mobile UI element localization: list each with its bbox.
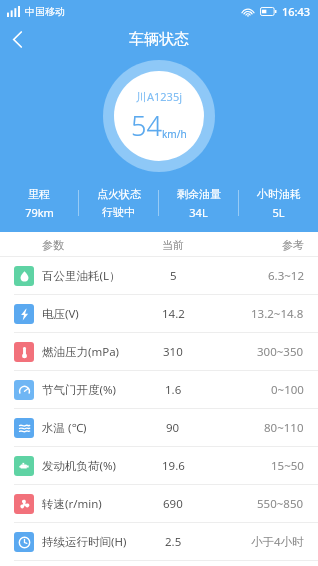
- staticText: 14.2: [162, 306, 185, 322]
- button[interactable]: 点火状态: [79, 187, 158, 219]
- staticText: 百公里油耗(L）: [42, 268, 121, 284]
- button[interactable]: 持续运行时间(H): [0, 523, 318, 561]
- button[interactable]: 百公里油耗(L）: [0, 257, 318, 295]
- staticText: 34L: [189, 205, 208, 220]
- staticText: 里程: [28, 187, 50, 201]
- staticText: 0~100: [271, 382, 304, 398]
- staticText: 燃油压力(mPa): [42, 344, 120, 360]
- staticText: 690: [163, 496, 183, 512]
- button[interactable]: 节气门开度(%): [0, 371, 318, 409]
- button[interactable]: 里程: [0, 187, 78, 220]
- staticText: 5L: [272, 205, 285, 220]
- staticText: 参考: [282, 238, 304, 252]
- button[interactable]: Back: [0, 22, 34, 56]
- staticText: 小时油耗: [257, 187, 301, 201]
- staticText: 持续运行时间(H): [42, 534, 127, 550]
- button[interactable]: 小时油耗: [239, 187, 318, 220]
- staticText: 转速(r/min): [42, 496, 102, 512]
- staticText: 300~350: [257, 344, 304, 360]
- staticText: 中国移动: [25, 5, 65, 18]
- staticText: 车辆状态: [129, 30, 189, 49]
- button[interactable]: 燃油压力(mPa): [0, 333, 318, 371]
- staticText: 90: [166, 420, 180, 436]
- staticText: 19.6: [162, 458, 185, 474]
- staticText: 310: [163, 344, 183, 360]
- button[interactable]: 电压(V): [0, 295, 318, 333]
- staticText: 80~110: [264, 420, 304, 436]
- staticText: 川A1235j: [136, 89, 183, 104]
- staticText: 剩余油量: [177, 187, 221, 201]
- staticText: 节气门开度(%): [42, 382, 116, 398]
- staticText: 5: [170, 268, 177, 284]
- staticText: 点火状态: [97, 187, 141, 201]
- button[interactable]: 发动机负荷(%): [0, 447, 318, 485]
- staticText: 当前: [162, 238, 184, 252]
- staticText: 2.5: [165, 534, 182, 550]
- staticText: 水温 (℃): [42, 420, 87, 436]
- staticText: 行驶中: [102, 205, 135, 219]
- staticText: 54: [131, 107, 162, 144]
- staticText: 小于4小时: [251, 534, 304, 550]
- button[interactable]: 转速(r/min): [0, 485, 318, 523]
- staticText: 1.6: [165, 382, 182, 398]
- staticText: 13.2~14.8: [251, 306, 304, 322]
- button[interactable]: 剩余油量: [159, 187, 238, 220]
- staticText: 发动机负荷(%): [42, 458, 116, 474]
- staticText: 电压(V): [42, 306, 79, 322]
- staticText: 550~850: [257, 496, 304, 512]
- staticText: km/h: [162, 127, 187, 141]
- staticText: 6.3~12: [268, 268, 304, 284]
- button[interactable]: 水温 (℃): [0, 409, 318, 447]
- staticText: 参数: [42, 238, 64, 252]
- staticText: 16:43: [282, 4, 311, 19]
- staticText: 15~50: [271, 458, 304, 474]
- staticText: 79km: [25, 205, 54, 220]
